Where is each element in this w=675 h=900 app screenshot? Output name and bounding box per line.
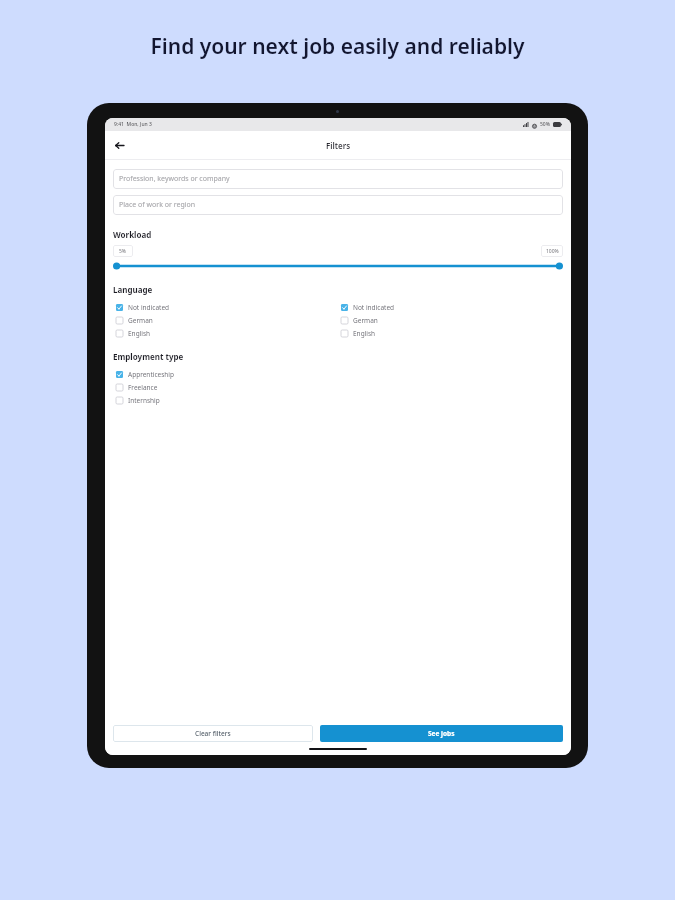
button[interactable]: Profession, keywords or company xyxy=(113,169,563,189)
staticText: Filters xyxy=(326,140,351,151)
staticText: English xyxy=(353,329,376,338)
staticText: German xyxy=(128,316,153,325)
staticText: Clear filters xyxy=(195,729,231,738)
staticText: Profession, keywords or company xyxy=(119,174,230,184)
staticText: 5% xyxy=(119,248,127,255)
staticText: Freelance xyxy=(128,383,158,392)
staticText: Internship xyxy=(128,396,160,405)
staticText: Not indicated xyxy=(128,303,170,312)
staticText: Apprenticeship xyxy=(128,370,175,379)
button[interactable]: Freelance xyxy=(113,381,563,394)
staticText: Workload xyxy=(113,229,152,240)
button[interactable]: Internship xyxy=(113,394,563,407)
button[interactable]: Back xyxy=(110,136,128,154)
button[interactable]: Not indicated xyxy=(113,301,338,314)
button[interactable]: Place of work or region xyxy=(113,195,563,215)
button[interactable]: English xyxy=(113,327,338,340)
staticText: 100% xyxy=(546,248,559,255)
staticText: Not indicated xyxy=(353,303,395,312)
staticText: Find your next job easily and reliably xyxy=(150,32,525,61)
staticText: See jobs xyxy=(428,729,455,738)
button[interactable]: Workload range slider xyxy=(113,261,563,271)
button[interactable]: Apprenticeship xyxy=(113,368,563,381)
staticText: German xyxy=(353,316,378,325)
button[interactable]: German xyxy=(113,314,338,327)
button[interactable]: Clear filters xyxy=(113,725,313,742)
staticText: Employment type xyxy=(113,351,184,362)
button[interactable]: English xyxy=(338,327,563,340)
button[interactable]: Not indicated xyxy=(338,301,563,314)
staticText: 9:41 Mon, Jun 3 xyxy=(114,121,152,128)
button[interactable]: See jobs xyxy=(320,725,563,742)
staticText: 50% xyxy=(540,121,550,128)
staticText: Place of work or region xyxy=(119,200,196,210)
staticText: Language xyxy=(113,284,153,295)
button[interactable]: German xyxy=(338,314,563,327)
staticText: English xyxy=(128,329,151,338)
